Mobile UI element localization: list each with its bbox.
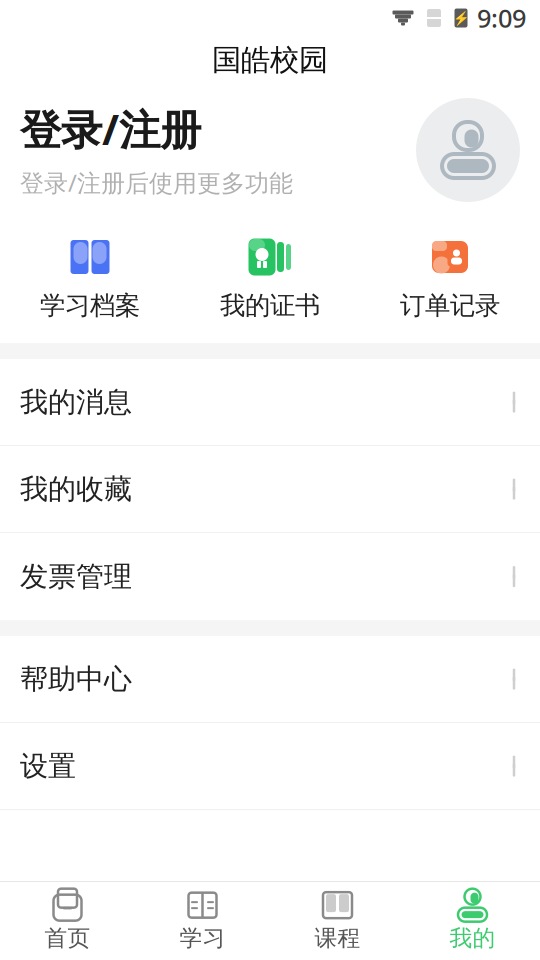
button[interactable]: 课程 bbox=[270, 882, 405, 960]
staticText: 我的消息 bbox=[20, 385, 132, 419]
button[interactable]: 设置 bbox=[0, 723, 540, 810]
staticText: 设置 bbox=[20, 749, 76, 783]
staticText: 订单记录 bbox=[400, 290, 500, 321]
staticText: 学习 bbox=[179, 924, 225, 952]
staticText: 发票管理 bbox=[20, 559, 132, 594]
staticText: 首页 bbox=[44, 924, 90, 952]
button[interactable]: 我的证书 bbox=[180, 230, 360, 327]
staticText: 登录/注册 bbox=[20, 102, 201, 156]
button[interactable]: 帮助中心 bbox=[0, 636, 540, 723]
button[interactable]: 首页 bbox=[0, 882, 135, 960]
button[interactable]: 我的 bbox=[405, 882, 540, 960]
button[interactable]: 订单记录 bbox=[360, 230, 540, 327]
staticText: 课程 bbox=[314, 924, 360, 952]
button[interactable]: 我的消息 bbox=[0, 359, 540, 446]
button[interactable]: 我的收藏 bbox=[0, 446, 540, 533]
staticText: 登录/注册后使用更多功能 bbox=[20, 166, 293, 198]
staticText: 学习档案 bbox=[40, 290, 140, 321]
staticText: ⚡ bbox=[452, 10, 469, 26]
staticText: 我的证书 bbox=[220, 290, 320, 321]
staticText: 我的 bbox=[449, 924, 495, 952]
staticText: 9:09 bbox=[477, 1, 526, 35]
button[interactable]: 头像 bbox=[416, 98, 520, 202]
staticText: 我的收藏 bbox=[20, 472, 132, 506]
staticText: 帮助中心 bbox=[20, 662, 132, 696]
button[interactable]: 发票管理 bbox=[0, 533, 540, 620]
staticText: 国皓校园 bbox=[212, 42, 328, 78]
button[interactable]: 学习档案 bbox=[0, 230, 180, 327]
button[interactable]: 学习 bbox=[135, 882, 270, 960]
button[interactable]: 登录/注册 bbox=[20, 102, 293, 198]
